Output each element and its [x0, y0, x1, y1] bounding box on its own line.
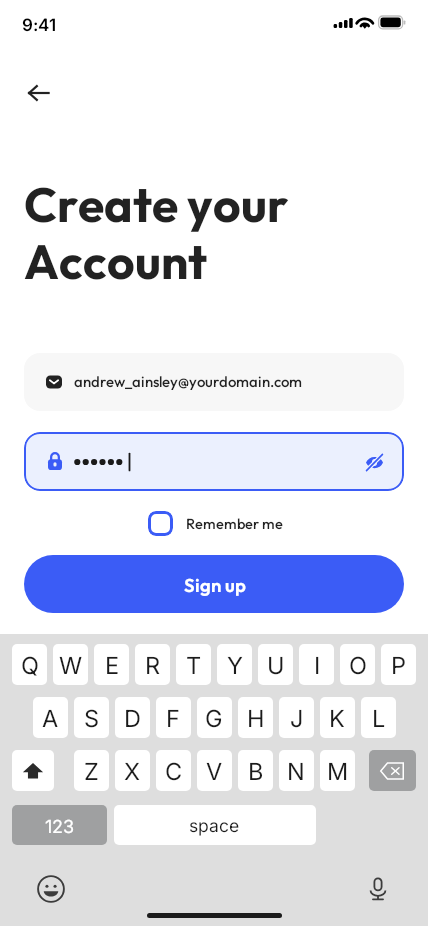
button[interactable]: X [115, 750, 150, 791]
button[interactable]: M [320, 750, 355, 791]
button[interactable]: Backspace [369, 750, 416, 791]
button[interactable]: F [156, 697, 191, 738]
button[interactable]: Q [12, 644, 47, 685]
button[interactable]: Y [217, 644, 252, 685]
button[interactable]: K [320, 697, 355, 738]
button[interactable]: I [299, 644, 334, 685]
button[interactable]: T [176, 644, 211, 685]
button[interactable]: C [156, 750, 191, 791]
button[interactable]: Hide password [359, 447, 389, 477]
button[interactable]: Hide password [24, 432, 404, 491]
button[interactable]: Z [74, 750, 109, 791]
button[interactable]: U [258, 644, 293, 685]
button[interactable]: L [361, 697, 396, 738]
button[interactable]: Back [16, 71, 60, 115]
button[interactable]: N [279, 750, 314, 791]
button[interactable]: A [33, 697, 68, 738]
button[interactable] [24, 555, 404, 613]
button[interactable]: O [340, 644, 375, 685]
button[interactable]: V [197, 750, 232, 791]
button[interactable]: Shift [12, 750, 54, 791]
button[interactable]: E [94, 644, 129, 685]
button[interactable] [148, 508, 282, 538]
button[interactable] [114, 805, 316, 845]
button[interactable]: J [279, 697, 314, 738]
button[interactable]: D [115, 697, 150, 738]
button[interactable]: B [238, 750, 273, 791]
button[interactable]: Voice input [363, 874, 393, 904]
button[interactable]: S [74, 697, 109, 738]
button[interactable]: Emoji keyboard [36, 874, 66, 904]
button[interactable] [12, 805, 107, 845]
button[interactable] [24, 353, 404, 411]
button[interactable]: R [135, 644, 170, 685]
button[interactable]: H [238, 697, 273, 738]
button[interactable]: W [53, 644, 88, 685]
button[interactable]: P [381, 644, 416, 685]
button[interactable]: G [197, 697, 232, 738]
